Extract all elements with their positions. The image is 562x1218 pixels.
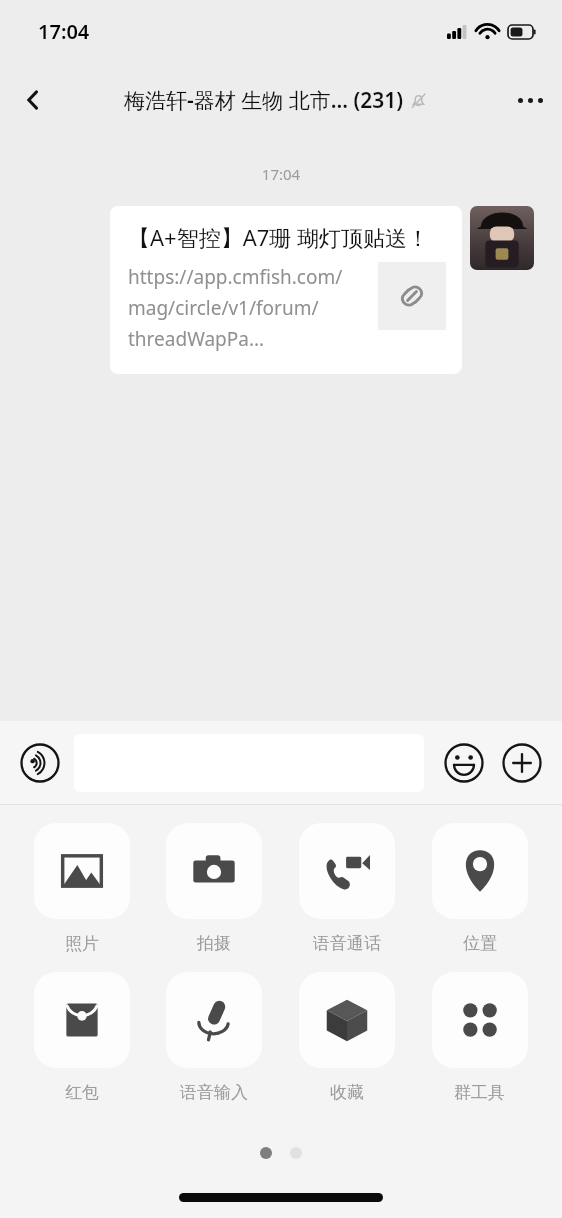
button[interactable]: Back [4, 71, 62, 129]
button[interactable]: Red packet [16, 972, 148, 1103]
button[interactable]: Voice input [148, 972, 280, 1103]
button[interactable]: Avatar [470, 206, 534, 270]
button[interactable]: Favorites [280, 972, 413, 1103]
staticText: https://app.cmfish.com/mag/circle/v1/for… [128, 264, 368, 352]
staticText: 语音通话 [313, 933, 381, 954]
button[interactable]: Photos [16, 823, 148, 954]
staticText: 17:04 [0, 164, 562, 184]
staticText: 群工具 [454, 1082, 505, 1103]
button[interactable]: Group tools [413, 972, 546, 1103]
staticText: 梅浩轩-器材 生物 北市... (231) [124, 86, 404, 115]
button[interactable]: Location [413, 823, 546, 954]
staticText: 红包 [65, 1082, 99, 1103]
button[interactable]: Voice call [280, 823, 413, 954]
button[interactable]: Emoji [438, 737, 490, 789]
button[interactable]: Camera [148, 823, 280, 954]
staticText: 收藏 [330, 1082, 364, 1103]
staticText: 【A+智控】A7珊 瑚灯顶贴送！ [128, 222, 430, 252]
staticText: 17:04 [38, 18, 90, 45]
staticText: 位置 [463, 933, 497, 954]
staticText: 拍摄 [197, 933, 231, 954]
button[interactable]: Voice message [14, 737, 66, 789]
button[interactable]: 【A+智控】A7珊 瑚灯顶贴送！ [110, 206, 462, 374]
staticText: 语音输入 [180, 1082, 248, 1103]
button[interactable]: More functions [496, 737, 548, 789]
button[interactable]: More options [501, 71, 559, 129]
staticText: 照片 [65, 933, 99, 954]
